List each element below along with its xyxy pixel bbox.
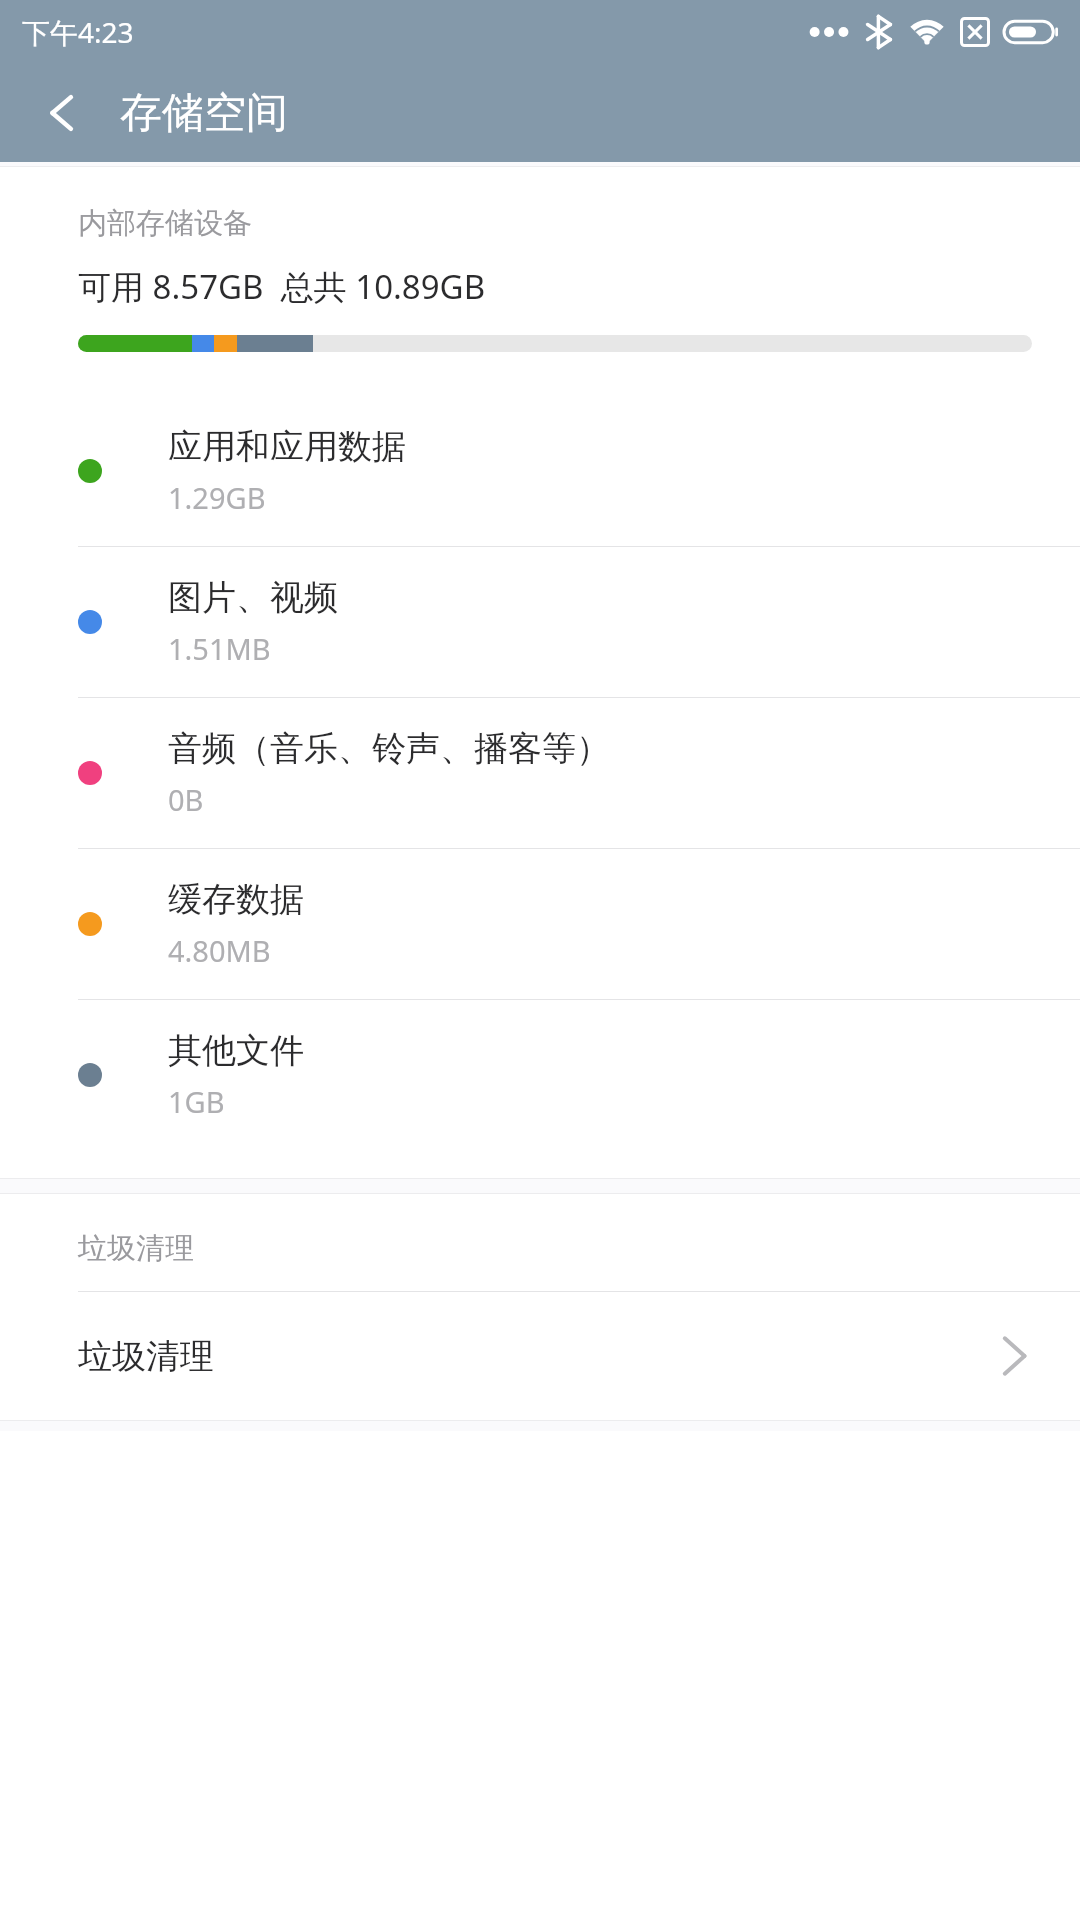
button[interactable]: 垃圾清理 [0,1292,1080,1420]
button[interactable]: 缓存数据 [0,849,1080,999]
staticText: 缓存数据 [168,878,304,921]
staticText: 垃圾清理 [78,1230,194,1267]
staticText: 下午4:23 [22,13,134,51]
staticText: 1GB [168,1082,225,1121]
staticText: 4.80MB [168,931,271,970]
staticText: 音频（音乐、铃声、播客等） [168,727,610,770]
staticText: 1.29GB [168,478,266,517]
button[interactable]: Back [30,80,96,146]
staticText: 应用和应用数据 [168,425,406,468]
staticText: 内部存储设备 [78,205,252,242]
staticText: 存储空间 [120,87,288,140]
button[interactable]: 图片、视频 [0,547,1080,697]
staticText: 图片、视频 [168,576,338,619]
button[interactable]: 应用和应用数据 [0,396,1080,546]
staticText: 0B [168,780,204,819]
button[interactable]: 音频（音乐、铃声、播客等） [0,698,1080,848]
staticText: 1.51MB [168,629,271,668]
staticText: 可用 8.57GB 总共 10.89GB [78,264,486,309]
staticText: 其他文件 [168,1029,304,1072]
staticText: 垃圾清理 [78,1335,214,1378]
button[interactable]: 其他文件 [0,1000,1080,1150]
